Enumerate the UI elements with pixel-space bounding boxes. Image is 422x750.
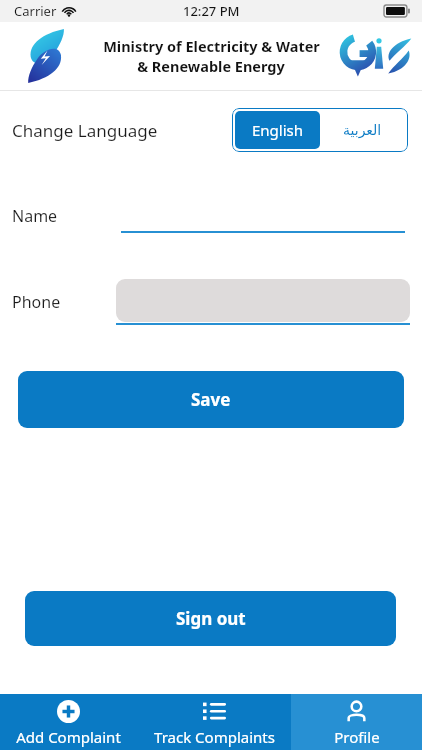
button[interactable]: Track Complaints: [137, 694, 291, 750]
button[interactable]: [121, 199, 405, 233]
button[interactable]: [116, 279, 410, 325]
staticText: Change Language: [12, 119, 158, 142]
staticText: 12:27 PM: [183, 2, 240, 20]
staticText: & Renewable Energy: [137, 56, 285, 76]
staticText: العربية: [343, 122, 382, 138]
staticText: Sign out: [176, 607, 246, 630]
button[interactable]: Add Complaint: [0, 694, 137, 750]
button[interactable]: English: [235, 111, 320, 149]
button[interactable]: Profile: [291, 694, 422, 750]
staticText: Track Complaints: [154, 727, 275, 747]
staticText: Name: [12, 205, 58, 227]
staticText: Ministry of Electricity & Water: [103, 36, 320, 56]
staticText: Carrier: [14, 2, 57, 20]
staticText: English: [252, 120, 304, 140]
staticText: Profile: [334, 727, 380, 747]
staticText: Save: [191, 388, 231, 411]
staticText: Phone: [12, 291, 61, 313]
button[interactable]: Save: [18, 371, 404, 428]
staticText: Add Complaint: [16, 727, 121, 747]
button[interactable]: العربية: [320, 111, 405, 149]
button[interactable]: Sign out: [25, 591, 396, 646]
